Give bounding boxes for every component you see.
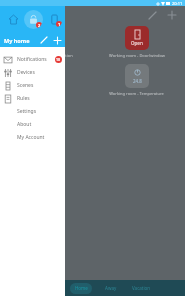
button[interactable]: Rules [0,92,65,105]
button[interactable]: Home [66,280,96,296]
staticText: About [17,121,32,128]
button[interactable]: Add [165,8,179,22]
staticText: 2 [38,23,41,28]
button[interactable]: Edit [145,8,159,22]
staticText: Notifications [17,56,47,63]
staticText: Settings [17,108,37,115]
button[interactable]: Devices [0,66,65,79]
staticText: Devices [17,69,35,76]
button[interactable]: Away [96,280,126,296]
staticText: 1 [58,22,61,27]
staticText: Scenes [17,82,34,89]
staticText: My home [4,37,30,44]
staticText: 10 [56,57,61,62]
button[interactable]: Devices [45,10,63,28]
button[interactable]: My Account [0,131,65,144]
staticText: Working room - Temperature [109,91,164,96]
staticText: 24.8 [133,78,142,84]
staticText: Open [131,40,143,46]
button[interactable]: Scenes [0,79,65,92]
button[interactable]: Open [92,26,181,58]
staticText: My Account [17,134,45,141]
staticText: Working room - Door/window [109,53,165,58]
button[interactable]: No [4,26,92,58]
staticText: Home [75,285,88,291]
staticText: 20:11 [172,1,183,6]
staticText: Master bedroom - Motion [24,53,73,58]
button[interactable]: Vacation [126,280,156,296]
button[interactable]: Edit home [39,35,49,45]
staticText: Vacation [132,285,151,291]
button[interactable]: Notifications [0,53,65,66]
button[interactable]: Home [4,10,22,28]
button[interactable]: Add home [52,35,62,45]
button[interactable]: About [0,118,65,131]
button[interactable]: Security [24,10,43,29]
button[interactable]: On [4,64,92,96]
staticText: Rules [17,95,30,102]
button[interactable]: Settings [0,105,65,118]
staticText: Away [105,285,117,291]
button[interactable]: 24.8 [92,64,181,96]
